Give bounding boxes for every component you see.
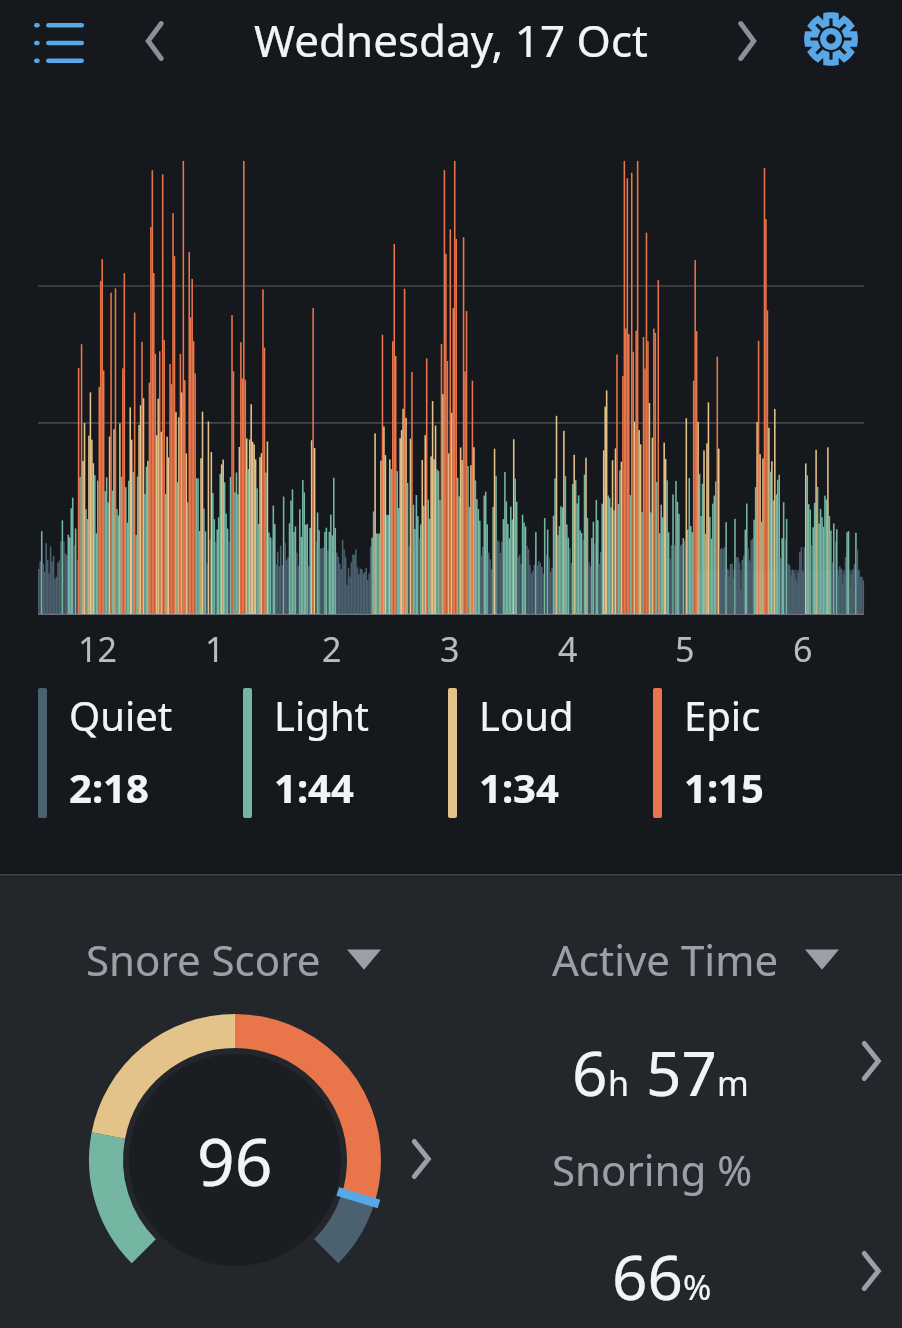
button[interactable]: Settings <box>798 6 864 72</box>
button[interactable]: Loud <box>448 688 648 818</box>
button[interactable]: Snoring % <box>552 1140 882 1198</box>
button[interactable]: Quiet <box>38 688 238 818</box>
staticText: 6 <box>793 626 813 672</box>
staticText: 3 <box>440 626 460 672</box>
button[interactable]: Snore waveform chart <box>38 150 864 614</box>
staticText: Snore Score <box>86 931 321 988</box>
button[interactable]: Epic <box>653 688 853 818</box>
staticText: 12 <box>78 626 117 672</box>
staticText: Epic <box>684 688 761 742</box>
staticText: 2:18 <box>69 760 149 814</box>
staticText: 57 <box>646 1030 717 1114</box>
staticText: 4 <box>558 626 578 672</box>
staticText: Quiet <box>69 688 173 742</box>
staticText: 6 <box>572 1030 608 1114</box>
staticText: Wednesday, 17 Oct <box>254 10 648 70</box>
staticText: 96 <box>197 1115 273 1205</box>
button[interactable]: Snore Score <box>86 928 416 990</box>
staticText: Loud <box>479 688 574 742</box>
staticText: 66 <box>612 1234 683 1318</box>
button[interactable]: Previous day <box>124 10 186 72</box>
staticText: 1:34 <box>479 760 559 814</box>
button[interactable]: Active time 6 hours 57 minutes <box>500 1018 890 1114</box>
staticText: 2 <box>322 626 342 672</box>
staticText: Snoring % <box>552 1141 753 1198</box>
button[interactable]: Menu <box>30 14 88 72</box>
staticText: 1 <box>205 626 225 672</box>
staticText: 5 <box>675 626 695 672</box>
button[interactable]: Active Time <box>552 928 882 990</box>
staticText: 1:44 <box>274 760 354 814</box>
staticText: m <box>717 1060 749 1106</box>
staticText: Light <box>274 688 370 742</box>
button[interactable]: Wednesday, 17 Oct <box>196 4 706 76</box>
button[interactable]: Snoring 66 percent <box>500 1232 890 1324</box>
button[interactable]: Next day <box>716 10 778 72</box>
button[interactable]: Light <box>243 688 443 818</box>
staticText: % <box>683 1264 712 1310</box>
staticText: h <box>608 1060 630 1106</box>
staticText: Active Time <box>552 931 779 988</box>
staticText: 1:15 <box>684 760 764 814</box>
button[interactable]: Snore score 96 <box>70 1010 450 1310</box>
